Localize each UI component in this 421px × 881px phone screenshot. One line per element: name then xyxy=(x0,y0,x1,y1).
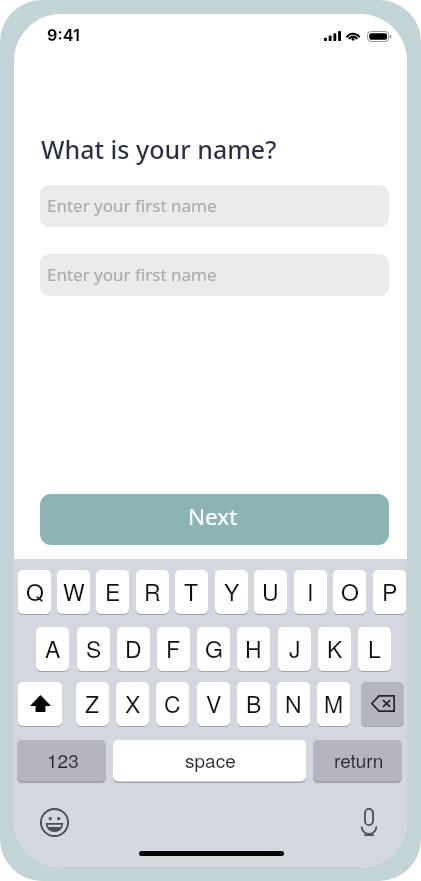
button[interactable]: W xyxy=(57,569,90,615)
staticText: L xyxy=(368,632,381,665)
staticText: A xyxy=(45,632,61,665)
button[interactable]: B xyxy=(237,681,270,727)
button[interactable]: D xyxy=(117,626,150,672)
staticText: P xyxy=(382,575,398,608)
button[interactable]: Y xyxy=(215,569,248,615)
staticText: K xyxy=(327,632,343,665)
staticText: return xyxy=(334,746,384,773)
staticText: S xyxy=(86,632,102,665)
staticText: O xyxy=(341,575,359,608)
staticText: J xyxy=(289,632,301,665)
button[interactable]: M xyxy=(317,681,350,727)
button[interactable]: X xyxy=(116,681,149,727)
button[interactable]: V xyxy=(197,681,230,727)
button[interactable]: J xyxy=(278,626,311,672)
button[interactable]: Shift xyxy=(18,681,62,727)
button[interactable]: Z xyxy=(76,681,109,727)
button[interactable]: Enter your first name xyxy=(40,185,389,227)
button[interactable]: F xyxy=(157,626,190,672)
button[interactable]: A xyxy=(36,626,69,672)
staticText: X xyxy=(125,687,141,720)
button[interactable]: space xyxy=(113,739,306,783)
staticText: F xyxy=(166,632,181,665)
staticText: Enter your first name xyxy=(47,263,217,286)
button[interactable]: T xyxy=(175,569,208,615)
button[interactable]: C xyxy=(156,681,189,727)
staticText: 9:41 xyxy=(47,25,80,44)
staticText: V xyxy=(206,687,222,720)
staticText: I xyxy=(307,575,314,608)
button[interactable]: L xyxy=(358,626,391,672)
staticText: U xyxy=(262,575,279,608)
staticText: Enter your first name xyxy=(47,194,217,217)
staticText: What is your name? xyxy=(41,132,277,166)
button[interactable]: Next xyxy=(40,494,389,545)
staticText: B xyxy=(246,687,262,720)
button[interactable]: I xyxy=(294,569,327,615)
staticText: H xyxy=(245,632,262,665)
staticText: R xyxy=(144,575,161,608)
staticText: Y xyxy=(224,575,240,608)
button[interactable]: Backspace xyxy=(361,681,404,727)
button[interactable]: N xyxy=(277,681,310,727)
staticText: Z xyxy=(85,687,100,720)
staticText: E xyxy=(105,575,121,608)
button[interactable]: G xyxy=(197,626,230,672)
button[interactable]: Q xyxy=(18,569,51,615)
staticText: Next xyxy=(188,501,238,532)
staticText: W xyxy=(63,575,85,608)
button[interactable]: R xyxy=(136,569,169,615)
button[interactable]: Emoji keyboard xyxy=(40,808,69,837)
button[interactable]: U xyxy=(254,569,287,615)
staticText: D xyxy=(125,632,142,665)
button[interactable]: Voice input xyxy=(361,808,377,836)
staticText: N xyxy=(285,687,302,720)
staticText: C xyxy=(164,687,181,720)
staticText: Q xyxy=(26,575,44,608)
button[interactable]: E xyxy=(96,569,129,615)
button[interactable]: S xyxy=(77,626,110,672)
button[interactable]: P xyxy=(373,569,406,615)
staticText: T xyxy=(184,575,199,608)
staticText: M xyxy=(324,687,344,720)
staticText: space xyxy=(185,746,236,773)
button[interactable]: 123 xyxy=(17,739,106,783)
staticText: G xyxy=(205,632,223,665)
staticText: 123 xyxy=(47,746,79,773)
button[interactable]: O xyxy=(333,569,366,615)
button[interactable]: K xyxy=(318,626,351,672)
button[interactable]: return xyxy=(313,739,402,783)
button[interactable]: Enter your first name xyxy=(40,254,389,296)
button[interactable]: H xyxy=(237,626,270,672)
